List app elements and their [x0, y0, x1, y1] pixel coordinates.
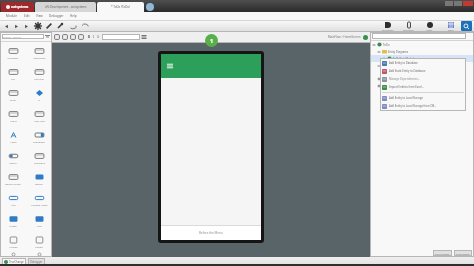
button[interactable]: Add Entity to Local Storage — [380, 94, 466, 102]
staticText: 1 — [210, 37, 214, 44]
button[interactable]: outsystems — [1, 2, 34, 12]
button[interactable]: Tool — [54, 34, 60, 40]
button[interactable]: Search... (Ctrl+F) — [2, 34, 44, 39]
button[interactable]: ToDo — [370, 41, 474, 48]
staticText: Debugger — [30, 260, 43, 264]
button[interactable]: Checkbox — [26, 147, 52, 168]
staticText: Add Static Entity to Database — [389, 69, 426, 73]
button[interactable] — [102, 34, 140, 40]
button[interactable]: Debugger — [28, 258, 45, 265]
button[interactable]: Tools — [56, 22, 64, 30]
button[interactable]: Container — [0, 42, 26, 63]
button[interactable]: Help — [67, 12, 80, 20]
staticText: TrueChange — [9, 260, 24, 264]
button[interactable]: Entities — [370, 62, 474, 69]
button[interactable]: Settings — [34, 22, 42, 30]
staticText: Edit — [24, 14, 30, 18]
button[interactable]: Dropdown — [26, 126, 52, 147]
button[interactable]: New tab — [146, 3, 154, 11]
button[interactable]: Add Static Entity to Database — [380, 67, 466, 75]
button[interactable]: Text Area — [26, 105, 52, 126]
button[interactable]: * ToDo (ToDo) — [97, 2, 144, 12]
button[interactable]: scroll+grows — [433, 250, 452, 256]
button[interactable]: Button — [26, 168, 52, 189]
button[interactable]: U — [97, 35, 100, 39]
staticText: scroll+grows — [435, 252, 450, 255]
button[interactable]: Edit — [45, 22, 53, 30]
button[interactable]: Tool — [62, 34, 68, 40]
button[interactable]: List Item — [26, 63, 52, 84]
staticText: Popover Menu — [31, 203, 48, 206]
staticText: Data — [448, 28, 454, 31]
button[interactable]: Popup — [26, 231, 52, 252]
button[interactable] — [372, 33, 466, 39]
button[interactable]: Form — [0, 84, 26, 105]
button[interactable]: If — [26, 84, 52, 105]
button[interactable]: Entity Diagrams — [370, 48, 474, 55]
button[interactable]: TrueChange — [2, 258, 26, 265]
button[interactable]: Tool — [78, 34, 84, 40]
staticText: Image — [9, 224, 17, 227]
button[interactable]: Module — [3, 12, 21, 20]
button[interactable]: Popover Menu — [26, 189, 52, 210]
staticText: ToDoDataModel — [393, 57, 414, 61]
button[interactable]: Redo — [81, 22, 89, 30]
button[interactable]: Image — [0, 210, 26, 231]
staticText: List — [11, 77, 15, 80]
button[interactable]: Style — [141, 34, 147, 40]
button[interactable]: Manage Dependencies... — [380, 75, 466, 83]
button[interactable]: Icon — [26, 210, 52, 231]
button[interactable]: Debugger — [46, 12, 67, 20]
button[interactable]: Menu — [166, 62, 174, 70]
button[interactable]: Add Entity to Local Storage from DB... — [380, 102, 466, 110]
button[interactable]: Input — [0, 105, 26, 126]
button[interactable]: Edit — [21, 12, 33, 20]
button[interactable]: Tool — [70, 34, 76, 40]
button[interactable]: B — [88, 35, 91, 39]
button[interactable]: I — [93, 35, 95, 39]
staticText: Expression — [33, 56, 46, 59]
button[interactable]: Forward — [13, 23, 20, 30]
button[interactable]: Open — [363, 35, 368, 40]
staticText: Form — [10, 98, 16, 101]
button[interactable]: Step 1 — [205, 34, 218, 47]
button[interactable]: Data — [440, 21, 461, 31]
button[interactable]: Filter — [45, 34, 50, 39]
button[interactable]: View — [33, 12, 46, 20]
staticText: Switch — [9, 161, 17, 164]
button[interactable]: Structures — [370, 75, 474, 82]
button[interactable]: Switch — [0, 147, 26, 168]
button[interactable]: Widget — [0, 252, 26, 257]
button[interactable]: Widget — [26, 252, 52, 257]
staticText: ToDo — [383, 43, 390, 47]
button[interactable]: Import Entities from Excel... — [380, 83, 466, 91]
staticText: Button — [35, 182, 43, 185]
button[interactable]: Forward — [23, 23, 30, 30]
button[interactable]: Processes — [377, 21, 398, 31]
staticText: Add Entity to Local Storage — [389, 96, 423, 100]
button[interactable]: autoUpdate — [454, 250, 472, 256]
button[interactable]: ToDoDataModel — [370, 55, 474, 62]
button[interactable]: List — [0, 63, 26, 84]
button[interactable]: Upload — [0, 231, 26, 252]
button[interactable]: Add Entity to Database — [380, 59, 466, 67]
button[interactable]: Link — [0, 189, 26, 210]
button[interactable]: Search — [461, 21, 472, 31]
staticText: Manage Dependencies... — [389, 77, 421, 81]
button[interactable]: Interface — [398, 21, 419, 31]
button[interactable]: Logic — [419, 21, 440, 31]
button[interactable]: Button Group — [0, 168, 26, 189]
button[interactable]: Label — [0, 126, 26, 147]
staticText: Import Entities from Excel... — [389, 85, 424, 89]
button[interactable]: Session — [370, 82, 474, 89]
button[interactable]: Back — [3, 23, 10, 30]
button[interactable]: vN: Development - outsystems — [35, 2, 96, 12]
button[interactable]: Expression — [26, 42, 52, 63]
button[interactable]: Undo — [69, 22, 77, 30]
staticText: MainFlow > HomeScreen — [328, 35, 361, 39]
staticText: Link — [11, 203, 16, 206]
